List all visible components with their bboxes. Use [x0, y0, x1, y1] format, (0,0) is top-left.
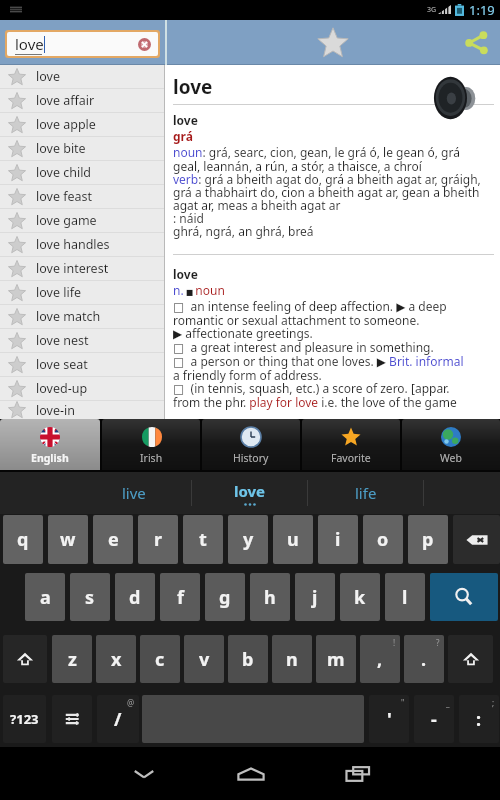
staticText: v [199, 647, 210, 672]
button[interactable]: d [115, 573, 155, 621]
button[interactable]: g [205, 573, 245, 621]
button[interactable]: love handles [0, 233, 164, 256]
button[interactable]: Shift [3, 635, 47, 683]
staticText: w [60, 527, 76, 552]
staticText: live [122, 483, 146, 503]
staticText: Favorite [331, 451, 371, 465]
staticText: d [129, 585, 141, 610]
button[interactable]: n [272, 635, 312, 683]
staticText: s [85, 585, 95, 610]
button[interactable]: ; [459, 695, 499, 743]
button[interactable]: love [7, 32, 158, 56]
button[interactable]: love bite [0, 137, 164, 160]
button[interactable]: y [228, 515, 268, 564]
button[interactable]: Web [402, 419, 500, 470]
button[interactable]: love match [0, 305, 164, 328]
button[interactable]: love game [0, 209, 164, 232]
button[interactable]: love-in [0, 401, 164, 419]
button[interactable]: live [76, 472, 191, 514]
button[interactable]: English [0, 419, 100, 470]
staticText: u [287, 527, 299, 552]
button[interactable]: w [48, 515, 88, 564]
button[interactable]: ? [404, 635, 444, 683]
button[interactable]: Irish [102, 419, 200, 470]
staticText: love nest [36, 332, 89, 349]
staticText: English [31, 451, 69, 465]
staticText: ?123 [10, 710, 39, 728]
staticText: love [234, 481, 266, 501]
button[interactable]: Home [197, 752, 304, 796]
staticText: x [111, 647, 122, 672]
staticText: love match [36, 308, 101, 325]
button[interactable]: _ [414, 695, 454, 743]
button[interactable]: Backspace [453, 515, 500, 564]
button[interactable]: Shift [448, 635, 493, 683]
staticText: l [402, 585, 408, 610]
staticText: n. ■ noun [173, 282, 225, 298]
button[interactable]: c [140, 635, 180, 683]
button[interactable]: t [183, 515, 223, 564]
button[interactable]: love [192, 472, 307, 514]
button[interactable]: Search [430, 573, 498, 621]
staticText: love apple [36, 116, 96, 133]
button[interactable]: k [340, 573, 380, 621]
button[interactable]: ! [360, 635, 400, 683]
staticText: r [154, 527, 163, 552]
staticText: . [421, 647, 427, 672]
button[interactable]: j [295, 573, 335, 621]
staticText: love seat [36, 356, 88, 373]
button[interactable]: l [385, 573, 425, 621]
button[interactable]: b [228, 635, 268, 683]
button[interactable]: love child [0, 161, 164, 184]
staticText: love game [36, 212, 97, 229]
other: Pronounce [433, 75, 479, 121]
button[interactable]: o [363, 515, 403, 564]
button[interactable]: q [3, 515, 43, 564]
staticText: y [243, 527, 254, 552]
button[interactable]: Favorite [302, 419, 400, 470]
button[interactable]: love life [0, 281, 164, 304]
button[interactable]: loved-up [0, 377, 164, 400]
button[interactable]: r [138, 515, 178, 564]
button[interactable]: s [70, 573, 110, 621]
button[interactable]: love nest [0, 329, 164, 352]
staticText: grá [173, 128, 193, 144]
staticText: 3G [427, 5, 437, 15]
button[interactable]: love seat [0, 353, 164, 376]
button[interactable]: m [316, 635, 356, 683]
button[interactable]: Hide keyboard [90, 752, 197, 796]
button[interactable]: f [160, 573, 200, 621]
button[interactable]: Settings [52, 695, 92, 743]
button[interactable]: love apple [0, 113, 164, 136]
button[interactable]: Recent apps [304, 752, 411, 796]
staticText: love [173, 112, 198, 128]
staticText: _ [446, 697, 450, 708]
button[interactable]: ?123 [3, 695, 46, 743]
button[interactable]: z [52, 635, 92, 683]
button[interactable]: i [318, 515, 358, 564]
button[interactable]: life [308, 472, 423, 514]
staticText: m [327, 647, 345, 672]
button[interactable]: Share [452, 20, 500, 65]
button[interactable]: " [369, 695, 409, 743]
staticText: love [36, 68, 60, 85]
button[interactable]: u [273, 515, 313, 564]
button[interactable]: v [184, 635, 224, 683]
button[interactable]: love affair [0, 89, 164, 112]
button[interactable]: x [96, 635, 136, 683]
button[interactable]: h [250, 573, 290, 621]
staticText: love-in [36, 402, 75, 419]
button[interactable]: p [408, 515, 448, 564]
staticText: noun: grá, searc, cion, gean, le grá ó, … [173, 144, 481, 239]
staticText: o [377, 527, 389, 552]
staticText: History [233, 451, 269, 465]
button[interactable]: a [25, 573, 65, 621]
button[interactable]: love [0, 65, 164, 88]
button[interactable]: @ [97, 695, 139, 743]
button[interactable]: Favorite [310, 20, 356, 65]
button[interactable]: e [93, 515, 133, 564]
button[interactable]: History [202, 419, 300, 470]
button[interactable]: love feast [0, 185, 164, 208]
button[interactable]: love interest [0, 257, 164, 280]
